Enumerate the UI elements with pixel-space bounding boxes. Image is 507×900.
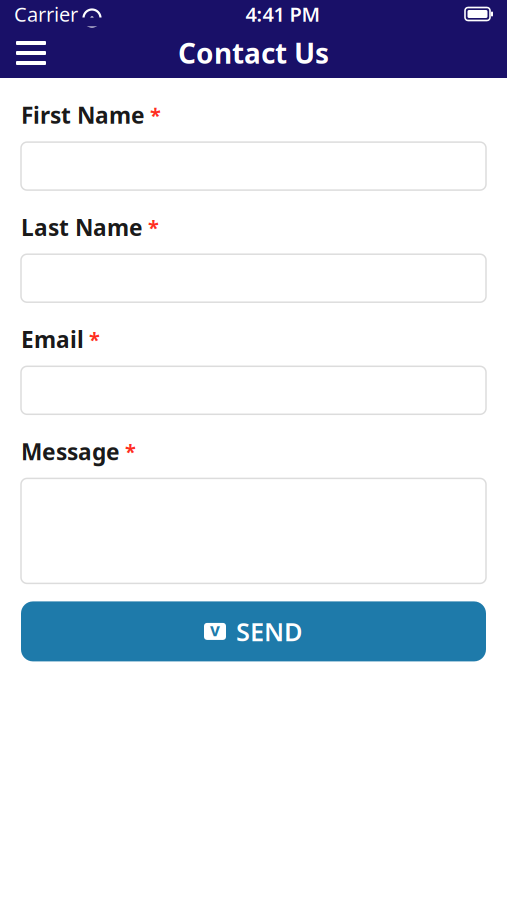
staticText: * xyxy=(150,102,161,128)
button[interactable]: v xyxy=(21,601,486,661)
staticText: First Name xyxy=(21,100,145,130)
staticText: SEND xyxy=(236,615,303,648)
staticText: Contact Us xyxy=(178,34,329,72)
staticText: * xyxy=(125,438,136,465)
staticText: Email xyxy=(21,324,84,354)
staticText: 4:41 PM xyxy=(245,1,320,27)
staticText: * xyxy=(89,326,100,353)
staticText: Carrier xyxy=(14,1,78,27)
staticText: v xyxy=(210,618,220,641)
staticText: Last Name xyxy=(21,212,143,242)
staticText: * xyxy=(148,214,159,240)
staticText: Message xyxy=(21,436,120,466)
button[interactable]: Menu xyxy=(0,29,62,77)
